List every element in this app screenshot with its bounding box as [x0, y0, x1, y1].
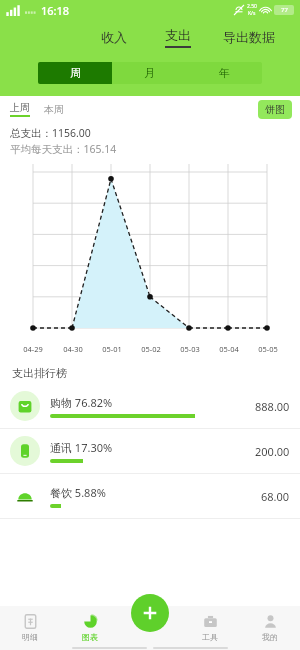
staticText: 图表	[82, 632, 98, 642]
staticText: 导出数据	[223, 29, 275, 45]
staticText: 200.00	[255, 444, 290, 459]
staticText: 05-02	[141, 344, 161, 354]
staticText: 年	[219, 66, 230, 80]
staticText: 本周	[44, 103, 64, 116]
button[interactable]: 记账	[131, 594, 169, 632]
button[interactable]: 餐饮 5.88%	[0, 474, 300, 518]
staticText: 2.50	[247, 3, 257, 10]
button[interactable]: 图表	[60, 606, 120, 650]
button[interactable]: 月	[112, 62, 187, 84]
staticText: 05-05	[258, 344, 278, 354]
button[interactable]: 周	[38, 62, 112, 84]
button[interactable]: 工具	[180, 606, 240, 650]
staticText: 收入	[101, 29, 127, 45]
staticText: 周	[70, 66, 81, 80]
button[interactable]: 支出	[159, 27, 197, 48]
staticText: 05-03	[180, 344, 200, 354]
staticText: 16:18	[41, 3, 70, 18]
staticText: 平均每天支出：165.14	[10, 142, 117, 156]
staticText: 月	[144, 66, 155, 80]
button[interactable]: 明细	[0, 606, 60, 650]
staticText: 支出	[165, 27, 191, 43]
staticText: 68.00	[261, 489, 290, 504]
staticText: 04-29	[23, 344, 43, 354]
button[interactable]: 年	[187, 62, 262, 84]
staticText: 通讯 17.30%	[50, 440, 113, 455]
button[interactable]: 购物 76.82%	[0, 384, 300, 428]
staticText: 04-30	[63, 344, 83, 354]
button[interactable]: 导出数据	[219, 25, 279, 49]
staticText: 上周	[10, 101, 30, 114]
staticText: 总支出：1156.00	[10, 126, 91, 140]
button[interactable]: 我的	[240, 606, 300, 650]
staticText: 77	[281, 6, 288, 14]
staticText: 888.00	[255, 399, 290, 414]
staticText: K/s	[248, 10, 256, 17]
staticText: 餐饮 5.88%	[50, 485, 106, 500]
staticText: 支出排行榜	[12, 366, 67, 380]
staticText: 饼图	[265, 103, 285, 116]
staticText: 明细	[22, 632, 38, 642]
staticText: 05-04	[219, 344, 239, 354]
button[interactable]: 通讯 17.30%	[0, 429, 300, 473]
staticText: 工具	[202, 632, 218, 642]
staticText: 我的	[262, 632, 278, 642]
button[interactable]: 本周	[44, 103, 64, 116]
staticText: 05-01	[102, 344, 122, 354]
staticText: 购物 76.82%	[50, 395, 113, 410]
button[interactable]: 上周	[10, 101, 30, 117]
staticText: 记账	[142, 606, 158, 616]
button[interactable]: 饼图	[258, 100, 292, 119]
button[interactable]: 收入	[95, 25, 133, 49]
